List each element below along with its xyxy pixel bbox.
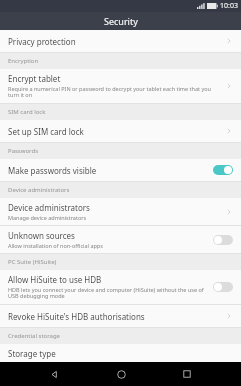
- button[interactable]: [213, 165, 233, 175]
- staticText: Encryption: [8, 57, 39, 65]
- button[interactable]: Set up SIM card lock: [0, 120, 241, 142]
- staticText: Privacy protection: [8, 36, 76, 47]
- staticText: Allow HiSuite to use HDB: [8, 274, 102, 285]
- button[interactable]: Back: [42, 362, 66, 386]
- staticText: PC Suite (HiSuite): [8, 258, 57, 266]
- button[interactable]: Privacy protection: [0, 30, 241, 52]
- staticText: Storage type: [8, 348, 56, 359]
- button[interactable]: [213, 235, 233, 245]
- staticText: SIM card lock: [8, 108, 46, 116]
- button[interactable]: Unknown sources: [0, 226, 241, 253]
- staticText: Device administrators: [8, 202, 90, 213]
- button[interactable]: Home: [109, 362, 133, 386]
- staticText: 10:03: [220, 1, 238, 11]
- button[interactable]: Device administrators: [0, 198, 241, 225]
- staticText: Manage device administrators: [8, 214, 87, 221]
- staticText: Revoke HiSuite's HDB authorisations: [8, 311, 145, 322]
- staticText: Allow installation of non-official apps: [8, 242, 103, 249]
- staticText: Security: [104, 15, 138, 27]
- button[interactable]: Make passwords visible: [0, 159, 241, 181]
- staticText: Passwords: [8, 147, 39, 155]
- button[interactable]: Allow HiSuite to use HDB: [0, 270, 241, 304]
- button[interactable]: Encrypt tablet: [0, 69, 241, 103]
- staticText: Require a numerical PIN or password to d…: [8, 85, 219, 99]
- staticText: Encrypt tablet: [8, 73, 61, 84]
- staticText: Make passwords visible: [8, 165, 97, 176]
- button[interactable]: [213, 282, 233, 292]
- button[interactable]: Storage type: [0, 344, 241, 362]
- staticText: Device administrators: [8, 186, 70, 194]
- staticText: HDB lets you connect your device and com…: [8, 286, 207, 300]
- button[interactable]: Revoke HiSuite's HDB authorisations: [0, 305, 241, 327]
- staticText: Set up SIM card lock: [8, 126, 84, 137]
- button[interactable]: Recent apps: [175, 362, 199, 386]
- staticText: Credential storage: [8, 332, 60, 340]
- staticText: Unknown sources: [8, 230, 75, 241]
